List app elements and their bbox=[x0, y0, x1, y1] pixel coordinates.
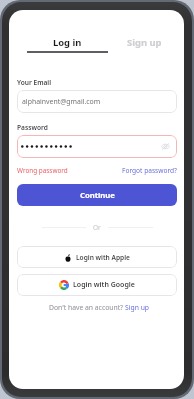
staticText: Log in bbox=[53, 36, 82, 49]
staticText: Wrong password bbox=[17, 166, 68, 175]
button[interactable]: Login with Google bbox=[17, 274, 177, 296]
staticText: Password bbox=[17, 123, 48, 132]
staticText: Or bbox=[93, 223, 101, 232]
staticText: Continue bbox=[80, 190, 115, 200]
button[interactable]: Login with Apple bbox=[17, 246, 177, 268]
button[interactable]: Log in bbox=[27, 36, 108, 54]
staticText: Sign up bbox=[127, 36, 162, 49]
button[interactable]: alphainvent@gmail.com bbox=[17, 90, 177, 113]
other: Show password bbox=[161, 143, 170, 150]
button[interactable]: Forgot password? bbox=[122, 166, 177, 175]
button[interactable]: Show password bbox=[17, 135, 177, 158]
button[interactable]: Sign up bbox=[105, 36, 184, 54]
staticText: Don't have an account? bbox=[49, 303, 125, 312]
staticText: Your Email bbox=[17, 78, 52, 87]
staticText: alphainvent@gmail.com bbox=[22, 97, 101, 106]
staticText: Login with Google bbox=[73, 280, 135, 290]
button[interactable]: Sign up bbox=[125, 303, 150, 312]
staticText: Login with Apple bbox=[76, 253, 130, 262]
button[interactable]: Continue bbox=[17, 184, 177, 206]
